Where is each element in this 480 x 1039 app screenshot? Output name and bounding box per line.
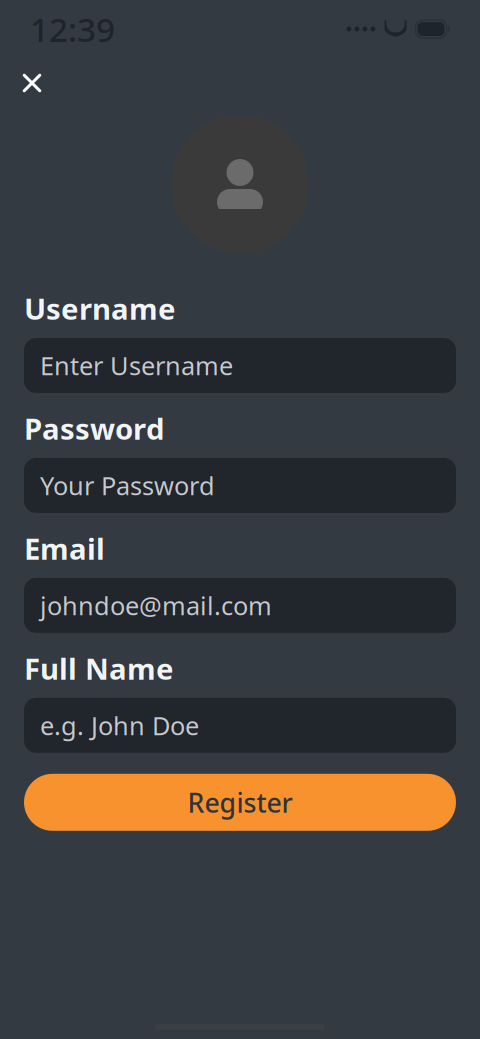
- staticText: Password: [24, 409, 165, 448]
- staticText: Your Password: [40, 469, 215, 502]
- button[interactable]: johndoe@mail.com: [24, 578, 456, 633]
- staticText: Username: [24, 289, 176, 328]
- button[interactable]: e.g. John Doe: [24, 698, 456, 753]
- staticText: 12:39: [30, 7, 115, 51]
- button[interactable]: Close: [10, 61, 54, 105]
- staticText: Full Name: [24, 649, 174, 688]
- staticText: Email: [24, 529, 105, 568]
- staticText: Enter Username: [40, 349, 233, 382]
- staticText: Register: [187, 785, 292, 820]
- button[interactable]: Your Password: [24, 458, 456, 513]
- button[interactable]: Register: [24, 774, 456, 831]
- staticText: johndoe@mail.com: [40, 588, 272, 622]
- staticText: e.g. John Doe: [40, 708, 199, 742]
- button[interactable]: Enter Username: [24, 338, 456, 393]
